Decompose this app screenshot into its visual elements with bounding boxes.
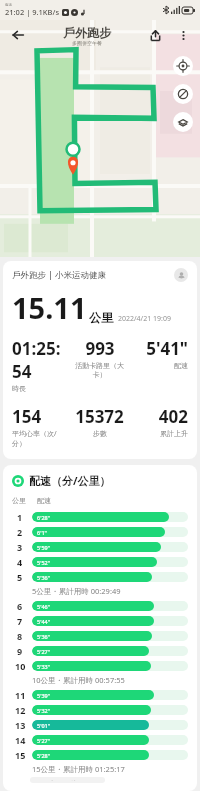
- button[interactable]: 5: [12, 569, 188, 584]
- staticText: 10公里・累計用時 00:57:55: [32, 675, 125, 685]
- staticText: 12: [15, 704, 26, 716]
- button[interactable]: 6: [12, 598, 188, 613]
- button[interactable]: 12: [12, 702, 188, 717]
- staticText: 15公里・累計用時 01:25:17: [32, 764, 125, 774]
- staticText: 5'52": [37, 559, 51, 566]
- staticText: 戶外跑步 | 小米运动健康: [12, 269, 107, 281]
- staticText: 配速: [37, 496, 51, 505]
- staticText: 2022/4/21 19:09: [118, 314, 171, 324]
- button[interactable]: 3: [12, 539, 188, 554]
- button[interactable]: Back: [6, 23, 30, 47]
- staticText: 01:25:54: [12, 337, 70, 383]
- staticText: 5'27": [37, 648, 51, 655]
- staticText: 5: [17, 571, 23, 583]
- button[interactable]: Locate: [173, 56, 193, 76]
- staticText: 5'44": [37, 618, 51, 625]
- staticText: 14: [15, 734, 26, 746]
- staticText: 5'32": [37, 707, 51, 714]
- staticText: 戶外跑步: [63, 25, 111, 40]
- staticText: 154: [12, 405, 42, 428]
- button[interactable]: 10: [12, 658, 188, 673]
- staticText: 5'27": [37, 737, 51, 744]
- staticText: 5'36": [37, 574, 51, 581]
- button[interactable]: 13: [12, 717, 188, 732]
- button[interactable]: More options: [172, 24, 194, 46]
- staticText: 累計上升: [160, 429, 188, 438]
- staticText: 13: [15, 719, 26, 731]
- staticText: 7: [17, 615, 23, 627]
- staticText: 8: [17, 630, 23, 642]
- staticText: 21:02 | 9.1KB/s: [5, 7, 60, 17]
- staticText: 993: [85, 337, 115, 360]
- staticText: 6'28": [37, 514, 51, 521]
- staticText: 公里: [12, 496, 32, 505]
- staticText: 5'36": [37, 633, 51, 640]
- staticText: 5'46": [37, 603, 51, 610]
- staticText: 5'28": [37, 752, 51, 759]
- staticText: 9: [17, 645, 23, 657]
- staticText: 5'33": [37, 663, 51, 670]
- button[interactable]: 8: [12, 628, 188, 643]
- staticText: 11: [15, 689, 26, 701]
- button[interactable]: 14: [12, 732, 188, 747]
- staticText: 5'41": [146, 337, 188, 360]
- button[interactable]: 7: [12, 613, 188, 628]
- button[interactable]: Profile: [174, 268, 188, 282]
- button[interactable]: Share: [144, 24, 166, 46]
- button[interactable]: 11: [12, 687, 188, 702]
- staticText: 4: [17, 556, 23, 568]
- staticText: 15.11: [12, 288, 87, 327]
- staticText: 15: [15, 749, 26, 761]
- staticText: 活動卡路里（大卡）: [70, 361, 129, 379]
- staticText: 5'01": [37, 722, 51, 729]
- button[interactable]: 4: [12, 554, 188, 569]
- button[interactable]: 15: [12, 747, 188, 762]
- staticText: 402: [158, 405, 188, 428]
- staticText: 公里: [89, 310, 113, 325]
- staticText: 時長: [12, 384, 26, 393]
- button[interactable]: 2: [12, 524, 188, 539]
- staticText: 6'1": [37, 529, 47, 536]
- staticText: 配速（分/公里）: [29, 473, 111, 488]
- staticText: 步數: [93, 429, 107, 438]
- staticText: 电话: [5, 3, 12, 7]
- staticText: 多圈併空午餐: [72, 40, 102, 46]
- staticText: 15372: [75, 405, 124, 428]
- staticText: 配速: [174, 361, 188, 370]
- button[interactable]: 1: [12, 509, 188, 524]
- button[interactable]: 9: [12, 643, 188, 658]
- staticText: 2: [17, 526, 23, 538]
- staticText: 3: [17, 541, 23, 553]
- staticText: 5'59": [37, 544, 51, 551]
- button[interactable]: Map layers: [173, 112, 193, 132]
- staticText: 1: [17, 511, 23, 523]
- staticText: 6: [17, 600, 23, 612]
- staticText: 5公里・累計用時 00:29:49: [32, 586, 121, 596]
- staticText: 10: [15, 660, 26, 672]
- button[interactable]: Hide track: [173, 84, 193, 104]
- staticText: 5'39": [37, 692, 51, 699]
- staticText: 平均心率（次/分）: [12, 429, 70, 448]
